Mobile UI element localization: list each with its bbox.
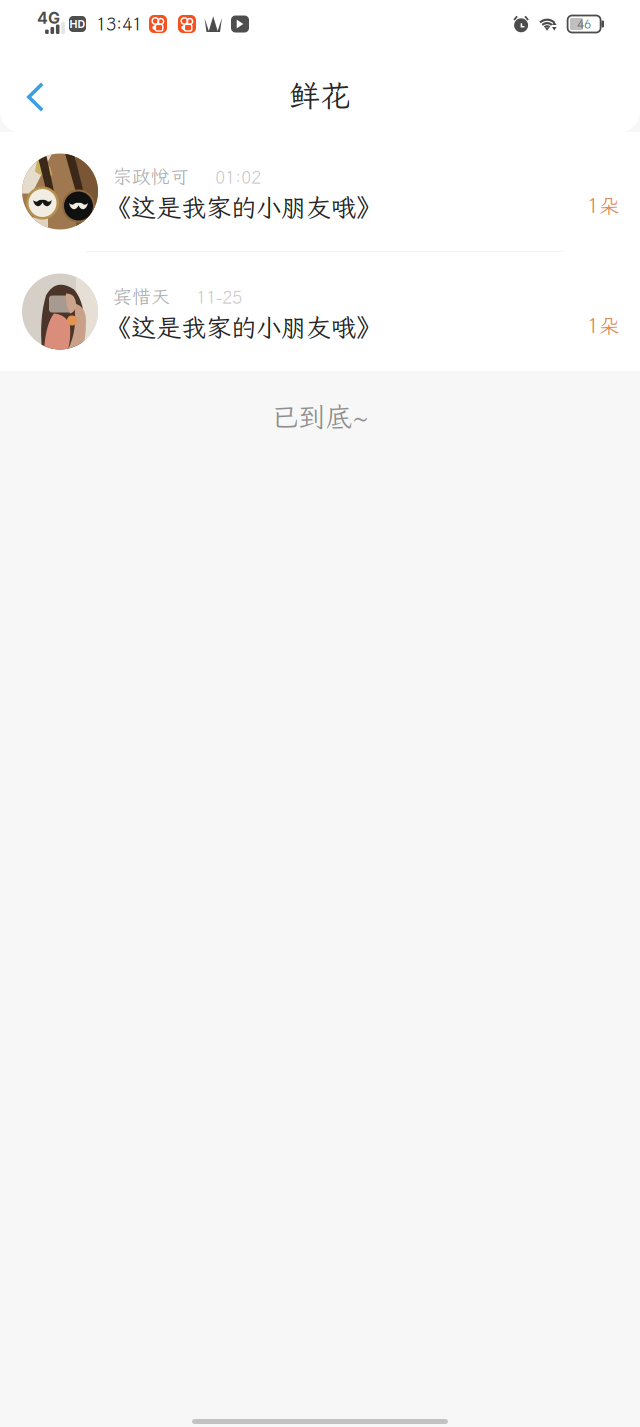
staticText: 01:02 — [215, 166, 261, 189]
staticText: 1朵 — [587, 192, 619, 219]
staticText: HD — [69, 17, 85, 30]
button[interactable]: 返回 — [0, 48, 67, 132]
button[interactable]: 宗政悦可 — [0, 132, 640, 251]
staticText: 《这是我家的小朋友哦》 — [106, 311, 381, 344]
staticText: 《这是我家的小朋友哦》 — [106, 191, 381, 224]
staticText: 46 — [577, 16, 591, 32]
staticText: 4G — [37, 8, 60, 27]
staticText: 宗政悦可 — [113, 164, 189, 189]
staticText: 11-25 — [196, 286, 242, 309]
staticText: 已到底~ — [271, 399, 368, 434]
staticText: 宾惜天 — [113, 284, 170, 309]
button[interactable]: 宾惜天 — [0, 252, 640, 371]
staticText: 鲜花 — [289, 75, 351, 115]
staticText: 13:41 — [96, 13, 142, 35]
staticText: 1朵 — [587, 312, 619, 339]
